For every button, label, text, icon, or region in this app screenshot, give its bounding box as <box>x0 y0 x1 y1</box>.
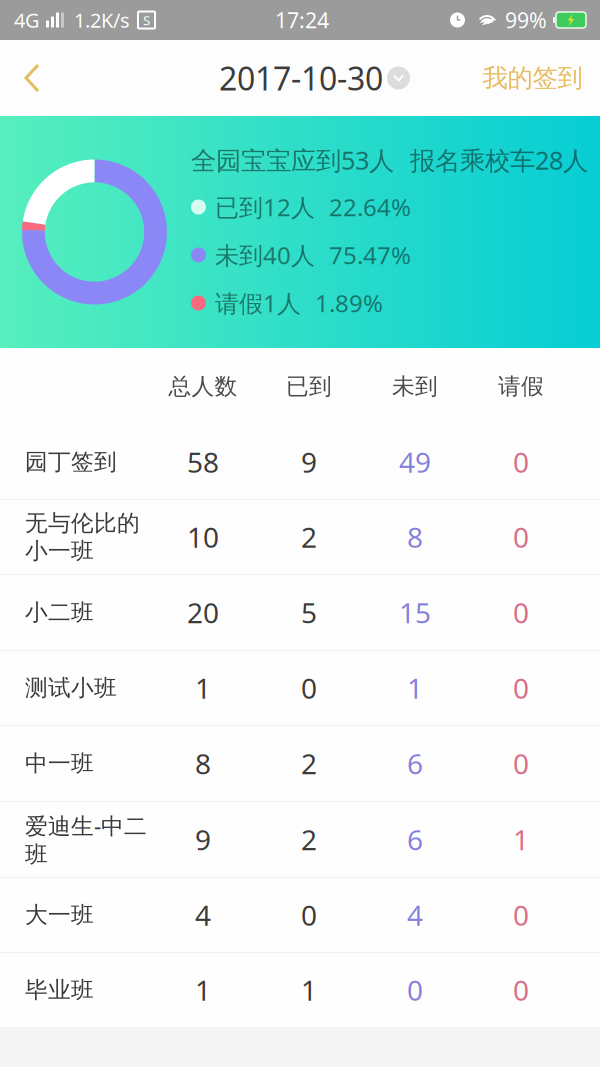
button[interactable]: 无与伦比的小一班 <box>0 500 600 575</box>
staticText: 毕业班 <box>25 976 94 1004</box>
staticText: 1 <box>301 971 317 1009</box>
staticText: 0 <box>301 896 317 934</box>
button[interactable]: Back <box>0 40 64 116</box>
staticText: 中一班 <box>25 750 94 777</box>
staticText: 请假 <box>498 373 544 400</box>
staticText: 0 <box>513 518 529 556</box>
staticText: 17:24 <box>275 6 329 34</box>
staticText: 总人数 <box>168 373 237 400</box>
button[interactable]: 园丁签到 <box>0 425 600 500</box>
button[interactable]: 小二班 <box>0 575 600 651</box>
staticText: 全园宝宝应到53人 报名乘校车28人 <box>191 143 588 177</box>
staticText: S <box>143 11 150 29</box>
staticText: 20 <box>187 594 219 631</box>
staticText: 0 <box>513 443 529 481</box>
staticText: 1.89% <box>315 287 383 319</box>
staticText: 10 <box>187 518 219 556</box>
button[interactable]: 2017-10-30 <box>219 40 410 116</box>
staticText: 4G <box>14 7 40 33</box>
staticText: 6 <box>407 821 423 858</box>
staticText: 2 <box>301 518 317 556</box>
staticText: 58 <box>187 443 219 481</box>
staticText: 无与伦比的小一班 <box>25 509 140 565</box>
staticText: 0 <box>301 669 317 707</box>
staticText: 9 <box>301 443 317 481</box>
staticText: 已到12人 <box>215 191 315 223</box>
button[interactable]: 我的签到 <box>465 40 600 116</box>
staticText: 0 <box>513 594 529 631</box>
staticText: 8 <box>407 518 423 556</box>
staticText: 6 <box>407 745 423 782</box>
staticText: 0 <box>513 745 529 782</box>
staticText: 99% <box>505 6 547 34</box>
staticText: 小二班 <box>25 599 94 626</box>
staticText: 园丁签到 <box>25 448 117 476</box>
staticText: 2017-10-30 <box>219 57 383 99</box>
staticText: 22.64% <box>329 191 411 223</box>
staticText: 未到40人 <box>215 239 315 271</box>
staticText: 15 <box>399 594 431 631</box>
staticText: 49 <box>399 443 431 481</box>
button[interactable]: 毕业班 <box>0 953 600 1028</box>
staticText: 爱迪生-中二班 <box>25 810 147 868</box>
staticText: 0 <box>513 669 529 707</box>
staticText: 5 <box>301 594 317 631</box>
staticText: 1.2K/s <box>74 7 130 33</box>
button[interactable]: 大一班 <box>0 878 600 953</box>
staticText: 未到 <box>392 373 438 400</box>
button[interactable]: 中一班 <box>0 726 600 802</box>
staticText: 8 <box>195 745 211 782</box>
staticText: 1 <box>407 669 423 707</box>
staticText: 1 <box>195 669 211 707</box>
staticText: 1 <box>195 971 211 1009</box>
button[interactable]: 爱迪生-中二班 <box>0 802 600 878</box>
staticText: 0 <box>513 896 529 934</box>
staticText: 2 <box>301 745 317 782</box>
staticText: 0 <box>407 971 423 1009</box>
staticText: 已到 <box>286 373 332 400</box>
staticText: 我的签到 <box>482 62 582 93</box>
staticText: 75.47% <box>329 239 411 271</box>
staticText: 4 <box>195 896 211 934</box>
staticText: 0 <box>513 971 529 1009</box>
staticText: 4 <box>407 896 423 934</box>
button[interactable]: 测试小班 <box>0 651 600 726</box>
staticText: 2 <box>301 821 317 858</box>
staticText: 测试小班 <box>25 674 117 702</box>
staticText: 9 <box>195 821 211 858</box>
staticText: 大一班 <box>25 901 94 929</box>
staticText: 1 <box>513 821 529 858</box>
staticText: 请假1人 <box>215 287 301 319</box>
